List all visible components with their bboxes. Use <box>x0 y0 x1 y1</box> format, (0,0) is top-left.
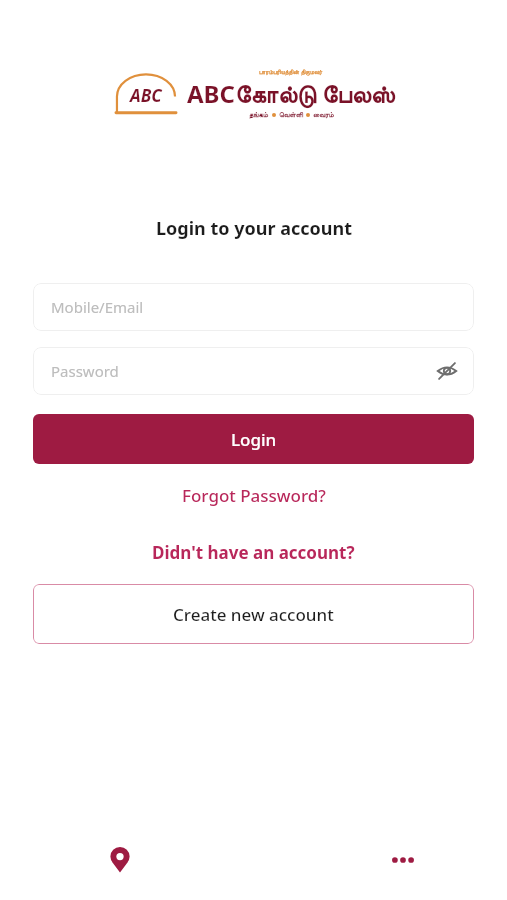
staticText: ABC <box>130 84 162 107</box>
button[interactable]: Mobile/Email <box>33 283 474 331</box>
button[interactable]: More options <box>379 836 427 884</box>
button[interactable]: Forgot Password? <box>170 480 338 511</box>
staticText: Login to your account <box>156 216 352 241</box>
staticText: Password <box>51 361 119 381</box>
staticText: Didn't have an account? <box>152 541 355 564</box>
button[interactable]: Show password <box>432 356 462 386</box>
staticText: பாரம்பரியத்தின் திருமலர் <box>259 68 323 76</box>
staticText: Mobile/Email <box>51 297 144 317</box>
staticText: Forgot Password? <box>182 484 326 507</box>
button[interactable]: Location <box>96 836 144 884</box>
button[interactable]: Password <box>33 347 474 395</box>
staticText: வைரம் <box>313 111 334 118</box>
button[interactable]: Create new account <box>33 584 474 644</box>
staticText: வெள்ளி <box>279 111 303 118</box>
staticText: Login <box>231 428 277 451</box>
button[interactable]: Login <box>33 414 474 464</box>
staticText: Create new account <box>173 603 334 626</box>
staticText: தங்கம் <box>249 111 269 118</box>
staticText: ABCகோல்டு பேலஸ் <box>187 77 395 110</box>
